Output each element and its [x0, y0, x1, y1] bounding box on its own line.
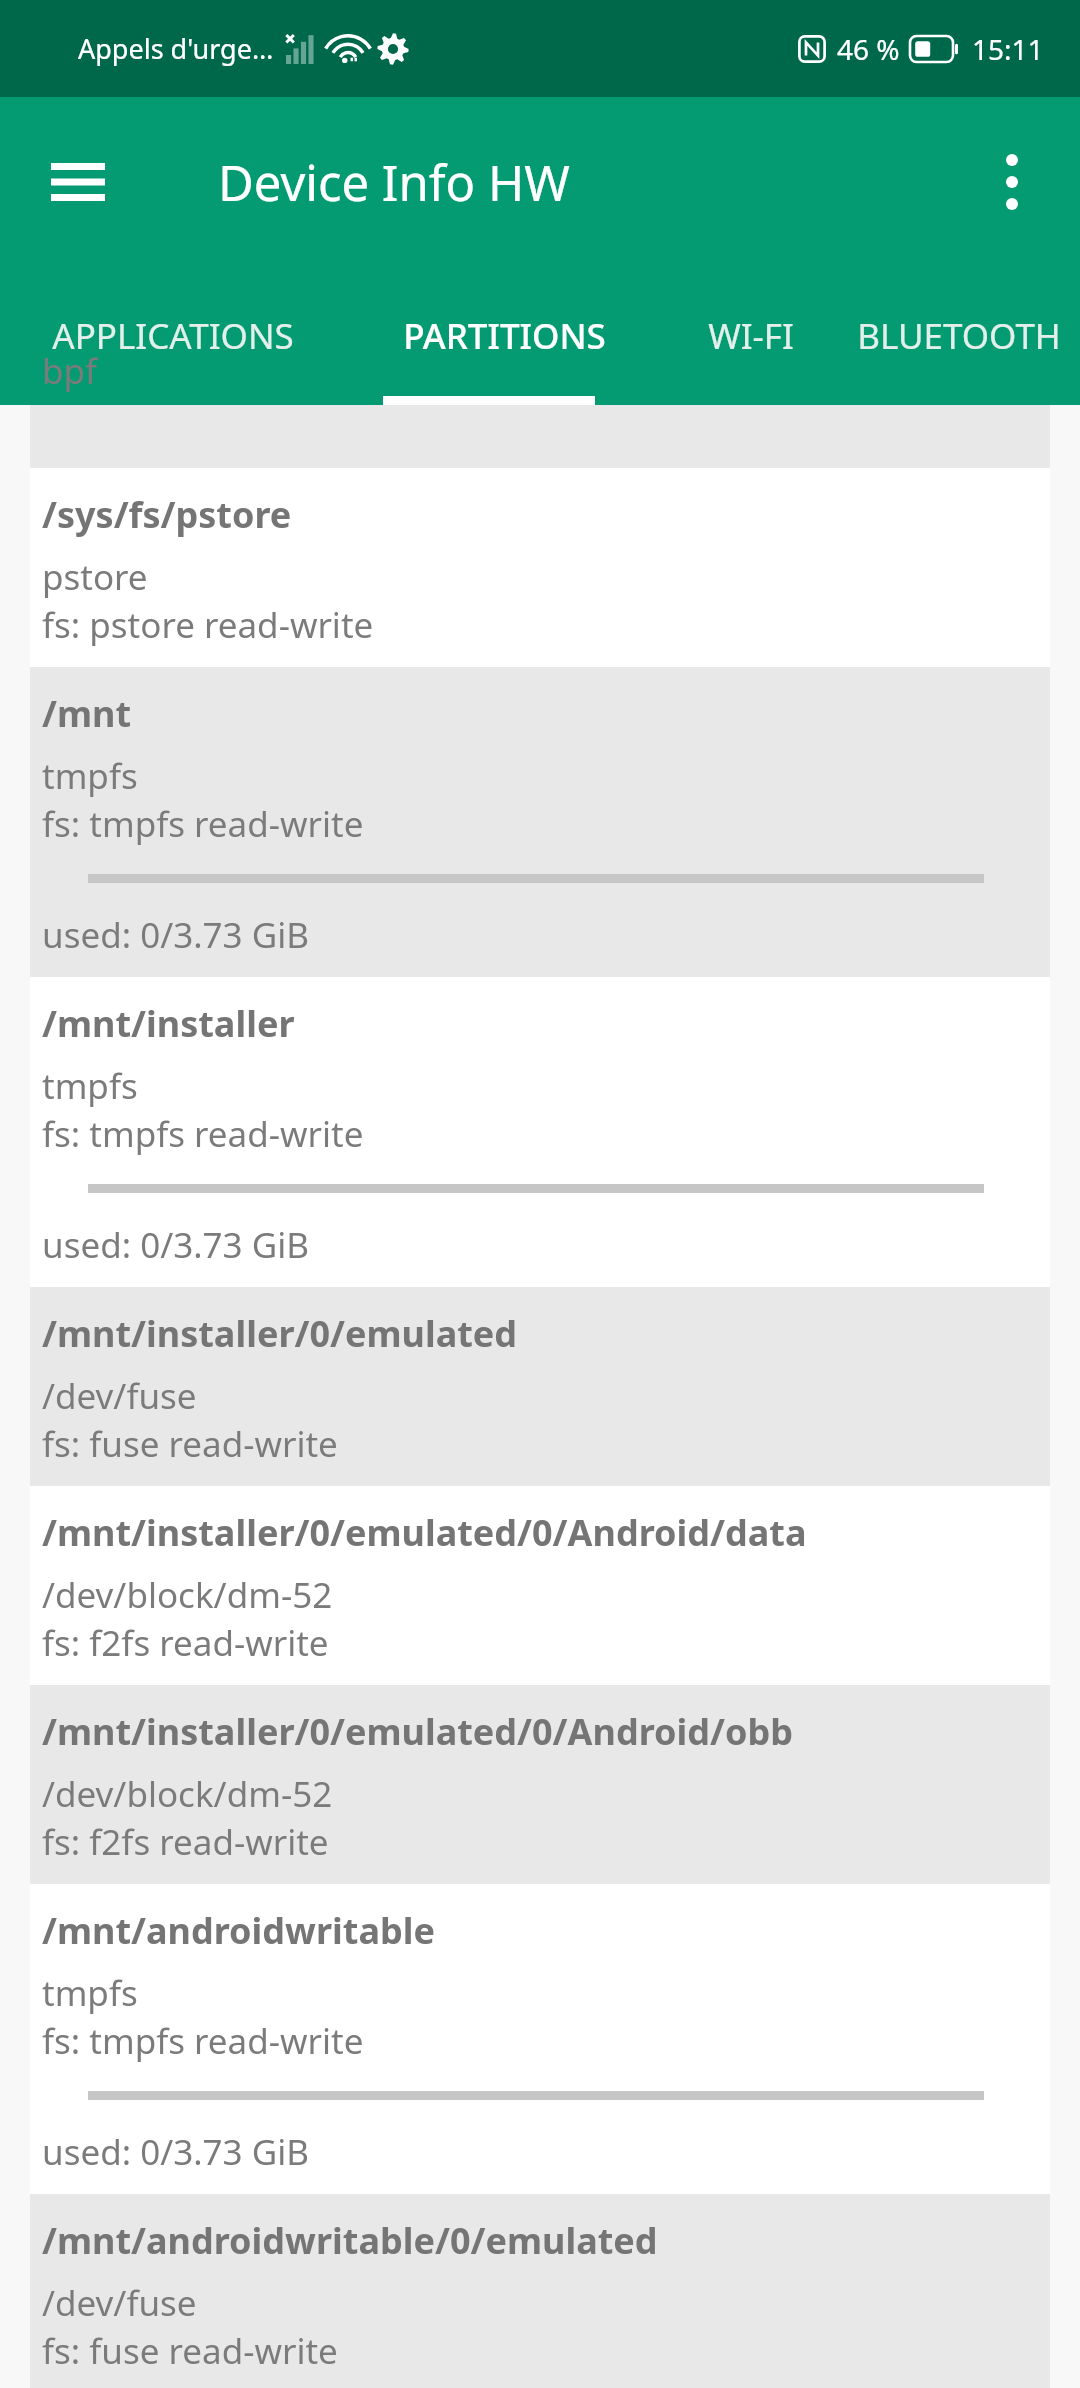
staticText: used: 0/3.73 GiB [42, 911, 309, 959]
staticText: 46 % [837, 30, 900, 68]
button[interactable]: PARTITIONS [345, 267, 663, 405]
button[interactable]: /mnt/androidwritable [30, 1884, 1050, 2194]
button[interactable]: More options [964, 134, 1060, 230]
staticText: /mnt [42, 689, 132, 738]
staticText: fs: f2fs read-write [42, 1619, 329, 1667]
staticText: BLUETOOTH [857, 312, 1061, 360]
staticText: /mnt/installer [42, 999, 295, 1048]
staticText: /mnt/installer/0/emulated/0/Android/data [42, 1508, 807, 1557]
staticText: /dev/fuse [42, 2279, 197, 2327]
staticText: /mnt/installer/0/emulated/0/Android/obb [42, 1707, 793, 1756]
staticText: tmpfs [42, 1062, 138, 1110]
staticText: fs: fuse read-write [42, 1420, 338, 1468]
staticText: Device Info HW [218, 149, 570, 216]
staticText: /dev/block/dm-52 [42, 1571, 333, 1619]
staticText: used: 0/3.73 GiB [42, 2128, 309, 2176]
staticText: /dev/block/dm-52 [42, 1770, 333, 1818]
staticText: fs: fuse read-write [42, 2327, 338, 2370]
button[interactable]: /mnt/androidwritable/0/emulated [30, 2194, 1050, 2388]
staticText: fs: tmpfs read-write [42, 800, 364, 848]
staticText: tmpfs [42, 1969, 138, 2017]
button[interactable]: /mnt/installer [30, 977, 1050, 1287]
button[interactable]: /mnt/installer/0/emulated/0/Android/obb [30, 1685, 1050, 1884]
button[interactable]: /mnt/installer/0/emulated [30, 1287, 1050, 1486]
button[interactable]: /mnt [30, 667, 1050, 977]
staticText: fs: tmpfs read-write [42, 2017, 364, 2065]
staticText: /mnt/installer/0/emulated [42, 1309, 518, 1358]
staticText: fs: bpf read-write [42, 401, 323, 410]
staticText: used: 0/3.73 GiB [42, 1221, 309, 1269]
staticText: fs: f2fs read-write [42, 1818, 329, 1866]
button[interactable]: APPLICATIONS [0, 267, 345, 405]
staticText: /sys/fs/pstore [42, 490, 292, 539]
staticText: fs: pstore read-write [42, 601, 374, 649]
staticText: PARTITIONS [403, 312, 606, 360]
staticText: pstore [42, 553, 148, 601]
staticText: fs: tmpfs read-write [42, 1110, 364, 1158]
staticText: bpf [42, 347, 98, 395]
staticText: tmpfs [42, 752, 138, 800]
staticText: /mnt/androidwritable/0/emulated [42, 2216, 658, 2265]
staticText: Appels d'urge… [78, 30, 274, 67]
button[interactable]: /mnt/installer/0/emulated/0/Android/data [30, 1486, 1050, 1685]
button[interactable]: Open navigation menu [30, 134, 126, 230]
button[interactable]: /sys/fs/pstore [30, 468, 1050, 667]
button[interactable]: WI-FI [663, 267, 838, 405]
staticText: 15:11 [972, 30, 1044, 68]
staticText: APPLICATIONS [52, 312, 294, 360]
staticText: /mnt/androidwritable [42, 1906, 435, 1955]
button[interactable]: BLUETOOTH [838, 267, 1080, 405]
staticText: /dev/fuse [42, 1372, 197, 1420]
staticText: WI-FI [708, 312, 794, 360]
